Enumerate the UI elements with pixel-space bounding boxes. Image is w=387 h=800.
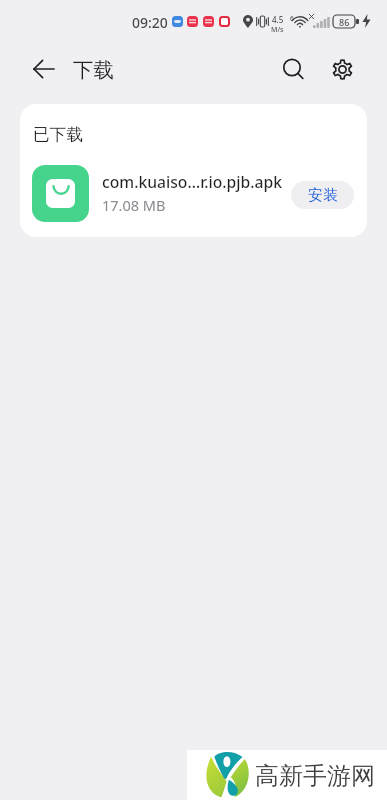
staticText: 下载 (73, 57, 114, 83)
staticText: 6 (290, 14, 294, 23)
staticText: M/s (271, 25, 284, 35)
staticText: 4.5 (272, 14, 284, 25)
button[interactable]: Settings (320, 44, 364, 88)
staticText: 高新手游网 (255, 761, 375, 791)
button[interactable]: com.kuaiso…r.io.pjb.apk (20, 157, 367, 229)
staticText: 安装 (308, 186, 338, 205)
button[interactable]: 安装 (291, 181, 354, 209)
staticText: 09:20 (132, 13, 168, 32)
staticText: 17.08 MB (102, 195, 166, 215)
button[interactable]: Search (270, 44, 314, 88)
staticText: 已下载 (33, 124, 83, 145)
button[interactable]: Back (22, 44, 66, 88)
staticText: com.kuaiso…r.io.pjb.apk (102, 171, 283, 192)
staticText: 86 (339, 16, 350, 28)
